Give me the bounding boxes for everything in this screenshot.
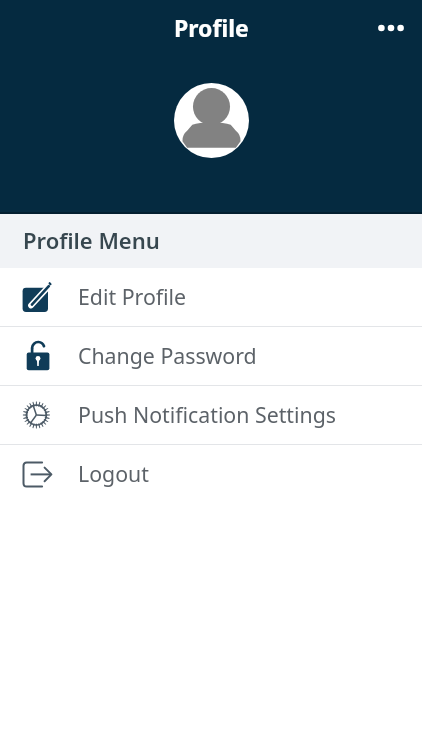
- staticText: Change Password: [78, 341, 257, 370]
- button[interactable]: Change Password: [0, 327, 422, 385]
- button[interactable]: Edit Profile: [0, 268, 422, 326]
- staticText: Edit Profile: [78, 282, 187, 311]
- staticText: Profile: [174, 12, 249, 43]
- button[interactable]: More options: [369, 6, 413, 50]
- staticText: Logout: [78, 459, 149, 488]
- button[interactable]: Push Notification Settings: [0, 386, 422, 444]
- staticText: Profile Menu: [23, 225, 160, 255]
- button[interactable]: Profile picture: [174, 83, 249, 158]
- button[interactable]: Logout: [0, 445, 422, 503]
- staticText: Push Notification Settings: [78, 400, 336, 429]
